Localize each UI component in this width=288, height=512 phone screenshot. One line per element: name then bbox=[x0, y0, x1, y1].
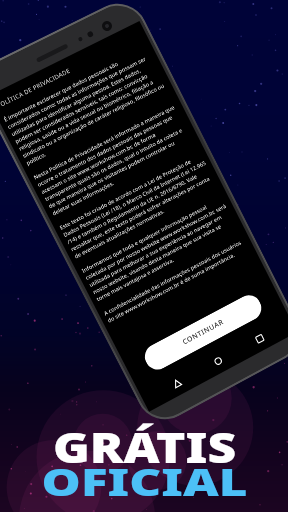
button[interactable]: Back bbox=[164, 370, 190, 397]
staticText: CONTINUAR bbox=[181, 317, 226, 347]
staticText: POLÍTICA DE PRIVACIDADE bbox=[0, 66, 72, 110]
staticText: GRÁTIS bbox=[53, 418, 236, 475]
button[interactable]: Recents bbox=[247, 325, 273, 352]
staticText: É importante esclarecer que dados pessoa… bbox=[2, 45, 250, 325]
staticText: OFICIAL bbox=[41, 456, 248, 506]
button[interactable]: CONTINUAR bbox=[140, 291, 266, 374]
button[interactable]: Home bbox=[205, 348, 231, 374]
